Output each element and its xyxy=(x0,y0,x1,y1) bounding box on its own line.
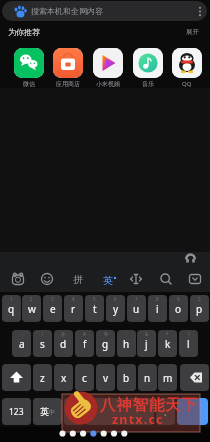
button[interactable]: b xyxy=(117,364,136,391)
staticText: ' xyxy=(126,331,128,337)
button[interactable] xyxy=(40,272,54,286)
button[interactable]: i xyxy=(148,295,167,322)
staticText: 拼 xyxy=(73,273,83,286)
button[interactable]: y xyxy=(106,295,125,322)
staticText: f xyxy=(83,337,87,351)
staticText: & xyxy=(145,331,149,337)
staticText: 微信 xyxy=(23,80,35,88)
button[interactable]: v xyxy=(96,364,115,391)
button[interactable]: 展开 xyxy=(180,26,204,38)
staticText: h xyxy=(123,337,130,351)
button[interactable]: x xyxy=(54,364,73,391)
button[interactable]: abc xyxy=(64,398,83,425)
staticText: 8 xyxy=(156,296,159,302)
staticText: 3 xyxy=(51,296,54,302)
button[interactable] xyxy=(129,272,143,286)
button[interactable]: r xyxy=(64,295,83,322)
staticText: u xyxy=(133,302,140,316)
staticText: . xyxy=(164,405,167,419)
button[interactable]: . xyxy=(156,398,175,425)
staticText: ~ xyxy=(20,331,23,337)
staticText: n xyxy=(144,371,151,385)
button[interactable]: s xyxy=(33,330,52,357)
button[interactable]: o xyxy=(169,295,188,322)
button[interactable]: g xyxy=(96,330,115,357)
button[interactable]: 英 xyxy=(99,271,117,289)
button[interactable]: d xyxy=(54,330,73,357)
staticText: r xyxy=(71,302,76,316)
button[interactable] xyxy=(85,398,154,425)
staticText: * xyxy=(166,331,169,337)
staticText: 英 xyxy=(103,274,113,287)
staticText: 6 xyxy=(114,296,117,302)
button[interactable]: u xyxy=(127,295,146,322)
staticText: ? xyxy=(188,331,190,337)
button[interactable]: j xyxy=(137,330,156,357)
staticText: i xyxy=(156,302,159,316)
staticText: 7 xyxy=(135,296,138,302)
staticText: # xyxy=(83,331,86,337)
staticText: y xyxy=(113,302,119,316)
staticText: a xyxy=(19,337,25,351)
button[interactable] xyxy=(93,48,123,78)
staticText: e xyxy=(50,302,56,316)
button[interactable]: 123 xyxy=(2,398,31,425)
staticText: o xyxy=(175,302,182,316)
staticText: 音乐 xyxy=(142,80,154,88)
button[interactable] xyxy=(14,48,44,78)
staticText: QQ xyxy=(182,80,192,88)
button[interactable]: c xyxy=(75,364,94,391)
staticText: 为你推荐 xyxy=(8,27,40,37)
button[interactable] xyxy=(53,48,83,78)
staticText: 八神智能天下 xyxy=(100,395,198,415)
staticText: k xyxy=(165,337,171,351)
staticText: 小米视频 xyxy=(96,80,120,88)
staticText: 2 xyxy=(30,296,33,302)
button[interactable]: n xyxy=(138,364,157,391)
button[interactable]: h xyxy=(117,330,136,357)
staticText: z xyxy=(40,371,45,385)
button[interactable] xyxy=(11,272,25,286)
staticText: 应用商店 xyxy=(56,80,80,88)
button[interactable]: m xyxy=(158,364,177,391)
staticText: 搜索本机和全网内容 xyxy=(31,6,103,16)
staticText: 9 xyxy=(177,296,180,302)
staticText: g xyxy=(102,337,109,351)
staticText: 0 xyxy=(198,296,201,302)
button[interactable] xyxy=(2,364,31,391)
button[interactable] xyxy=(172,48,202,78)
staticText: ! xyxy=(42,331,44,337)
button[interactable]: w xyxy=(22,295,41,322)
staticText: 英 xyxy=(40,406,49,417)
button[interactable]: p xyxy=(190,295,209,322)
staticText: v xyxy=(103,371,109,385)
button[interactable]: 搜索本机和全网内容 xyxy=(2,1,207,21)
button[interactable]: k xyxy=(158,330,177,357)
staticText: 中 xyxy=(49,408,55,416)
button[interactable] xyxy=(33,398,62,425)
button[interactable] xyxy=(177,398,208,425)
staticText: 123 xyxy=(9,406,24,418)
button[interactable] xyxy=(180,364,209,391)
staticText: m xyxy=(163,371,173,385)
button[interactable] xyxy=(188,272,202,286)
staticText: t xyxy=(93,302,97,316)
button[interactable]: t xyxy=(85,295,104,322)
staticText: d xyxy=(60,337,67,351)
button[interactable] xyxy=(133,48,163,78)
button[interactable]: q xyxy=(2,295,21,322)
staticText: abc xyxy=(68,407,79,416)
button[interactable]: z xyxy=(33,364,52,391)
button[interactable]: 拼 xyxy=(70,271,86,287)
staticText: b xyxy=(123,371,130,385)
staticText: p xyxy=(196,302,203,316)
button[interactable]: a xyxy=(12,330,31,357)
staticText: j xyxy=(145,337,148,351)
button[interactable]: l xyxy=(179,330,198,357)
staticText: % xyxy=(104,331,108,337)
button[interactable] xyxy=(159,272,173,286)
staticText: x xyxy=(61,371,67,385)
button[interactable]: f xyxy=(75,330,94,357)
button[interactable]: e xyxy=(43,295,62,322)
staticText: s xyxy=(40,337,45,351)
